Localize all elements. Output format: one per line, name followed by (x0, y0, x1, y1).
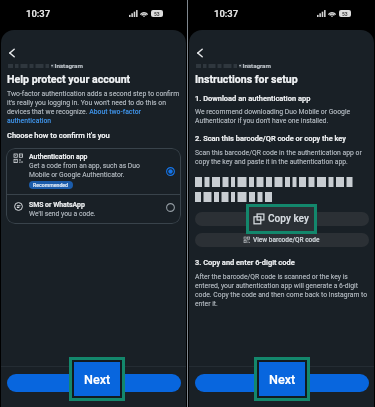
staticText: Scan this barcode/QR code in the authent… (195, 149, 371, 166)
staticText: • Instagram (239, 62, 271, 69)
button[interactable]: Next (74, 362, 120, 396)
staticText: Recommended (33, 182, 69, 188)
staticText: Instructions for setup (195, 73, 298, 85)
staticText: Help protect your account (7, 73, 131, 85)
button[interactable]: Back (3, 44, 20, 61)
button[interactable]: SMS or WhatsApp (6, 195, 181, 224)
staticText: Two-factor authentication adds a second … (7, 90, 183, 125)
staticText: 3. Copy and enter 6-digit code (195, 258, 295, 267)
staticText: After the barcode/QR code is scanned or … (195, 273, 371, 308)
staticText: Choose how to confirm it's you (7, 131, 110, 140)
staticText: 2. Scan this barcode/QR code or copy the… (195, 134, 346, 143)
staticText: 10:37 (26, 8, 51, 19)
staticText: Copy key (271, 215, 304, 224)
staticText: We recommend downloading Duo Mobile or G… (195, 108, 371, 125)
staticText: Next (269, 372, 296, 387)
staticText: View barcode/QR code (253, 236, 320, 244)
staticText: Next (273, 378, 291, 388)
staticText: Next (84, 372, 111, 387)
staticText: 53 (154, 11, 160, 17)
staticText: 1. Download an authentication app (195, 94, 311, 103)
button[interactable]: Next (259, 362, 305, 396)
staticText: Authentication app (29, 153, 88, 161)
button[interactable]: Authentication app (6, 148, 181, 194)
staticText: Get a code from an app, such as Duo Mobi… (29, 162, 162, 179)
staticText: We'll send you a code. (29, 210, 96, 218)
staticText: 53 (342, 11, 348, 17)
staticText: Copy key (268, 213, 309, 225)
button[interactable]: Copy key (249, 207, 314, 231)
staticText: • Instagram (51, 62, 83, 69)
button[interactable]: View barcode/QR code (195, 233, 369, 247)
button[interactable]: Next (195, 374, 369, 392)
button[interactable]: Copy key (195, 212, 369, 226)
button[interactable]: Back (191, 44, 208, 61)
button[interactable]: Next (7, 374, 181, 392)
staticText: 10:37 (214, 8, 239, 19)
staticText: Next (85, 378, 103, 388)
staticText: SMS or WhatsApp (29, 201, 85, 209)
